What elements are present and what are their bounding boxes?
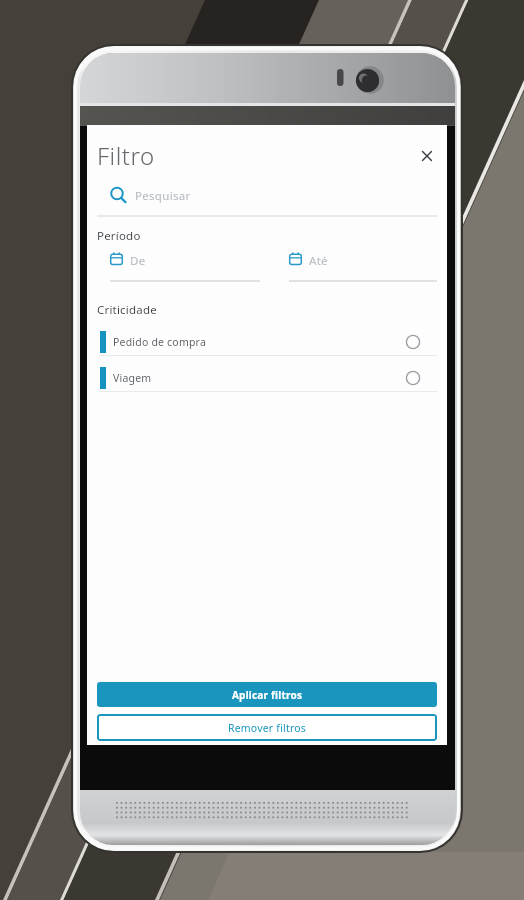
button[interactable]: De <box>110 249 260 283</box>
staticText: Pedido de compra <box>113 335 206 349</box>
staticText: Filtro <box>97 139 155 172</box>
button[interactable] <box>415 144 439 168</box>
button[interactable]: Pedido de compra <box>97 330 437 354</box>
button[interactable]: Até <box>289 249 437 283</box>
staticText: Pesquisar <box>135 188 191 204</box>
button[interactable]: Pesquisar <box>95 180 437 210</box>
staticText: De <box>130 253 146 269</box>
staticText: Aplicar filtros <box>232 688 303 702</box>
button[interactable]: Aplicar filtros <box>97 682 437 707</box>
staticText: Até <box>309 253 328 269</box>
button[interactable]: Remover filtros <box>97 714 437 741</box>
staticText: Viagem <box>113 371 152 385</box>
staticText: Criticidade <box>97 302 157 318</box>
staticText: Período <box>97 228 141 244</box>
button[interactable]: Viagem <box>97 366 437 390</box>
staticText: Remover filtros <box>228 721 307 735</box>
